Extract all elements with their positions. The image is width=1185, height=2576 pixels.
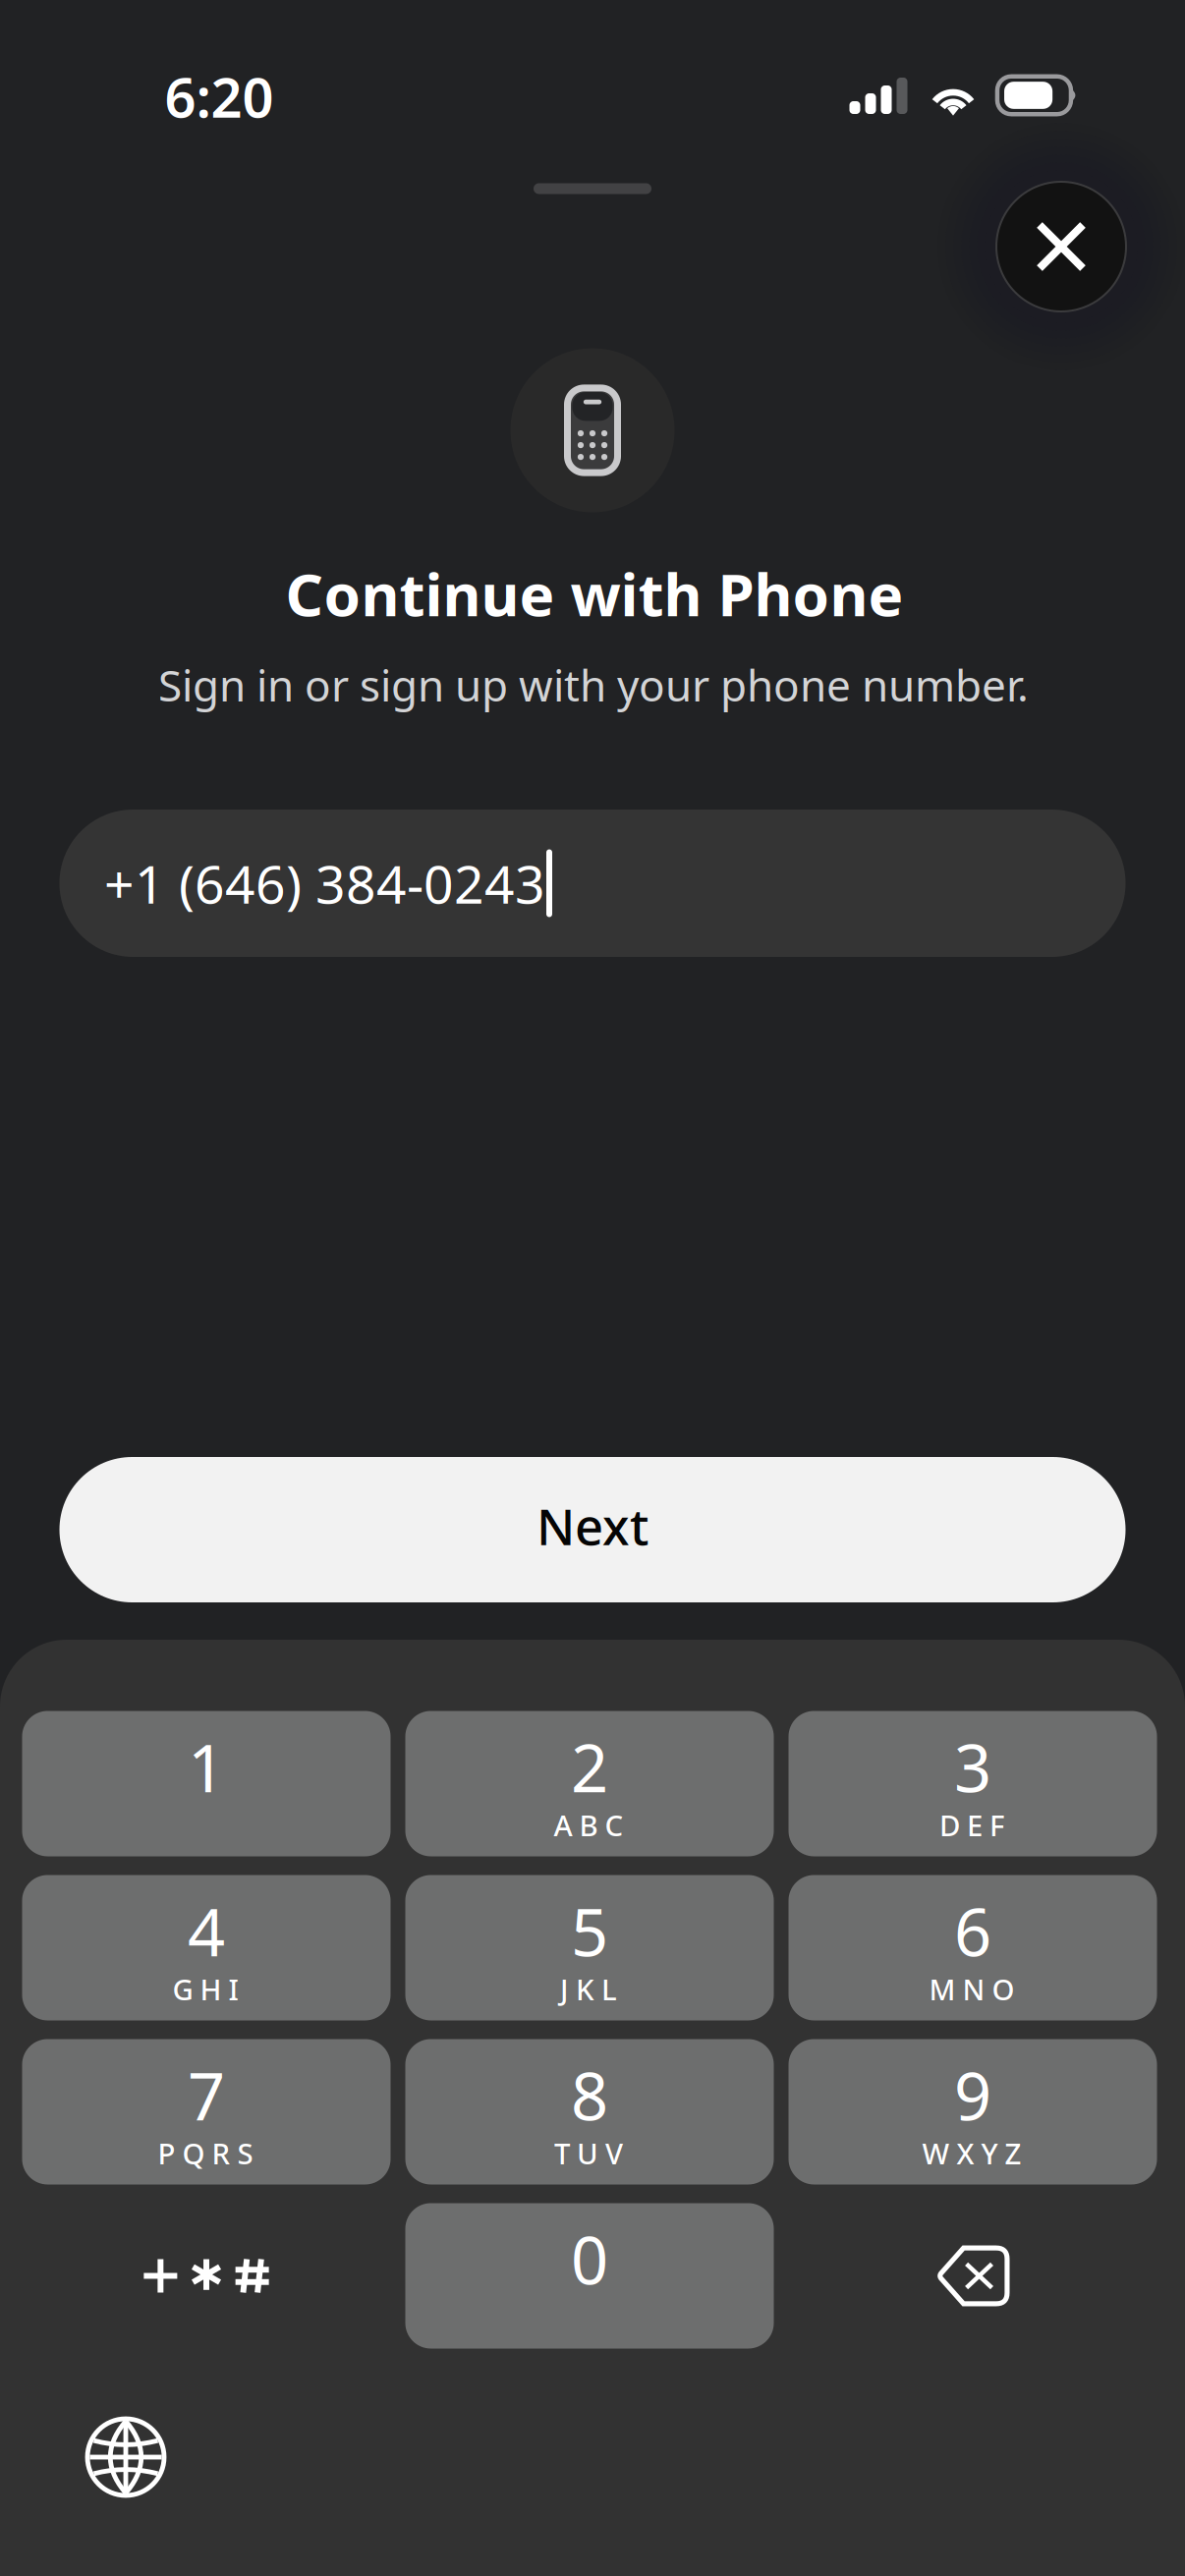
button[interactable]: Change keyboard bbox=[57, 2388, 195, 2526]
staticText: MNO bbox=[929, 1970, 1015, 2008]
button[interactable]: Delete bbox=[789, 2203, 1157, 2349]
staticText: 2 bbox=[571, 1723, 608, 1810]
staticText: 3 bbox=[954, 1723, 991, 1810]
button[interactable]: 5 bbox=[405, 1875, 774, 2020]
staticText: 0 bbox=[571, 2216, 608, 2303]
button[interactable]: 1 bbox=[22, 1711, 391, 1856]
staticText: TUV bbox=[554, 2134, 623, 2172]
staticText: 4 bbox=[188, 1887, 225, 1974]
button[interactable]: 7 bbox=[22, 2039, 391, 2184]
staticText: JKL bbox=[560, 1970, 617, 2008]
staticText: Sign in or sign up with your phone numbe… bbox=[158, 656, 1029, 713]
staticText: 1 bbox=[188, 1723, 225, 1810]
button[interactable]: 2 bbox=[405, 1711, 774, 1856]
staticText: GHI bbox=[172, 1970, 238, 2008]
staticText: Continue with Phone bbox=[285, 554, 903, 633]
staticText: DEF bbox=[939, 1806, 1004, 1844]
staticText: 9 bbox=[954, 2052, 991, 2139]
button[interactable]: Next bbox=[59, 1457, 1126, 1602]
button[interactable]: 4 bbox=[22, 1875, 391, 2020]
button[interactable]: Plus, star, hash bbox=[22, 2203, 391, 2349]
staticText: +1 (646) 384-0243 bbox=[104, 848, 545, 918]
staticText: 6:20 bbox=[165, 60, 274, 133]
staticText: Next bbox=[536, 1493, 649, 1559]
button[interactable]: 8 bbox=[405, 2039, 774, 2184]
button[interactable]: 0 bbox=[405, 2203, 774, 2349]
staticText: 6 bbox=[954, 1887, 991, 1974]
staticText: WXYZ bbox=[922, 2134, 1021, 2172]
staticText: ABC bbox=[554, 1806, 623, 1844]
button[interactable]: 9 bbox=[789, 2039, 1157, 2184]
staticText: PQRS bbox=[158, 2134, 253, 2172]
staticText: 5 bbox=[571, 1887, 608, 1974]
staticText: 7 bbox=[188, 2052, 225, 2139]
button[interactable]: 6 bbox=[789, 1875, 1157, 2020]
button[interactable]: 3 bbox=[789, 1711, 1157, 1856]
staticText: 8 bbox=[571, 2052, 608, 2139]
button[interactable]: Close bbox=[996, 182, 1126, 311]
